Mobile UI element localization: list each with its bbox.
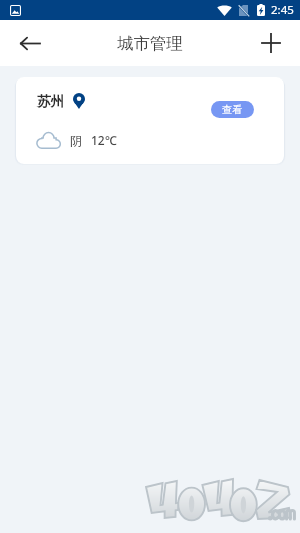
staticText: 城市管理 xyxy=(117,33,183,54)
button[interactable]: Add city xyxy=(248,20,300,66)
button[interactable]: 苏州 xyxy=(16,77,284,164)
staticText: 查看 xyxy=(222,103,243,116)
staticText: 苏州 xyxy=(37,93,64,110)
button[interactable]: Back xyxy=(0,20,52,66)
staticText: 12℃ xyxy=(91,132,117,148)
staticText: 2:45 xyxy=(271,2,294,18)
button[interactable]: 查看 xyxy=(211,101,254,118)
staticText: 阴 xyxy=(70,133,82,148)
